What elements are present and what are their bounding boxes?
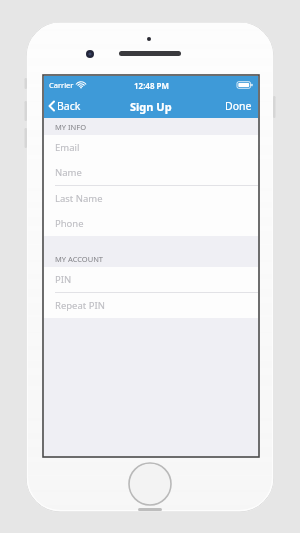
staticText: Back [57, 99, 81, 113]
button[interactable]: Home [128, 462, 172, 506]
button[interactable]: Repeat PIN [44, 293, 258, 318]
button[interactable]: Done [219, 94, 258, 118]
staticText: Done [225, 99, 252, 113]
staticText: PIN [55, 273, 72, 286]
button[interactable]: PIN [44, 267, 258, 292]
button[interactable]: Name [44, 160, 258, 185]
staticText: Last Name [55, 192, 103, 205]
staticText: Name [55, 166, 82, 179]
staticText: Sign Up [130, 99, 172, 114]
staticText: Repeat PIN [55, 299, 105, 312]
staticText: Email [55, 141, 80, 154]
staticText: MY ACCOUNT [55, 254, 104, 264]
staticText: MY INFO [55, 122, 86, 132]
button[interactable]: Phone [44, 211, 258, 236]
staticText: 12:48 PM [134, 80, 169, 91]
staticText: Phone [55, 217, 84, 230]
staticText: Carrier [49, 80, 74, 90]
button[interactable]: Email [44, 135, 258, 160]
button[interactable]: Last Name [44, 186, 258, 211]
button[interactable]: Back [44, 94, 89, 118]
